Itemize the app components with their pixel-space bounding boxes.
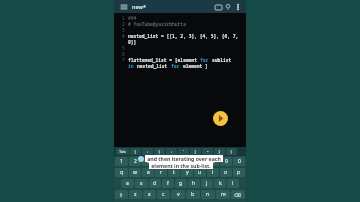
staticText: i — [212, 169, 214, 176]
staticText: : — [147, 149, 149, 154]
staticText: j — [206, 180, 208, 187]
button[interactable]: Menu — [118, 1, 129, 12]
staticText: v — [177, 191, 180, 198]
button[interactable]: ' — [178, 148, 189, 155]
staticText: | — [218, 149, 221, 154]
button[interactable]: s — [135, 179, 148, 188]
button[interactable]: f — [162, 179, 174, 188]
button[interactable]: r — [155, 168, 167, 177]
button[interactable]: i — [207, 168, 219, 177]
button[interactable]: 8 — [207, 157, 219, 166]
button[interactable]: | — [190, 148, 201, 155]
button[interactable]: 1 — [114, 13, 246, 147]
button[interactable]: k — [214, 179, 226, 188]
button[interactable]: b — [186, 190, 200, 199]
button[interactable]: e — [142, 168, 154, 177]
button[interactable]: Hints — [223, 2, 233, 12]
staticText: 3 — [147, 158, 150, 165]
staticText: p — [237, 169, 241, 176]
button[interactable]: u — [194, 168, 206, 177]
button[interactable]: : — [166, 148, 177, 155]
staticText: a — [126, 180, 129, 187]
button[interactable]: y — [181, 168, 193, 177]
staticText: 1 — [120, 158, 123, 165]
staticText: f — [167, 180, 169, 187]
button[interactable]: | — [226, 148, 237, 155]
button[interactable]: 1 — [115, 157, 128, 166]
staticText: 5 — [122, 45, 125, 51]
staticText: element in the sub-list. — [151, 162, 211, 169]
button[interactable]: z — [129, 190, 142, 199]
staticText: q — [120, 169, 124, 176]
button[interactable]: 7 — [194, 157, 206, 166]
staticText: w — [133, 169, 138, 176]
button[interactable]: q — [115, 168, 128, 177]
button[interactable]: p — [233, 168, 245, 177]
staticText: x — [148, 191, 151, 198]
button[interactable]: | — [154, 148, 165, 155]
staticText: 8 — [212, 158, 215, 165]
button[interactable]: x — [143, 190, 156, 199]
button[interactable]: v — [171, 190, 185, 199]
staticText: nested_list — [137, 63, 171, 69]
button[interactable]: a — [121, 179, 134, 188]
staticText: element ] — [183, 63, 208, 69]
staticText: in — [128, 63, 137, 69]
staticText: d — [153, 180, 157, 187]
button[interactable]: : — [142, 148, 153, 155]
staticText: e — [147, 169, 150, 176]
staticText: | — [230, 149, 233, 154]
staticText: nested_list = [[1, 2, 3], [4, 5], [6, 7,… — [128, 33, 246, 39]
staticText: o — [224, 169, 228, 176]
button[interactable]: t — [168, 168, 180, 177]
button[interactable]: Run — [213, 111, 228, 126]
button[interactable]: ⌫ — [231, 190, 245, 199]
staticText: # YouTube@yasirbhutta — [128, 21, 186, 27]
staticText: r — [160, 169, 163, 176]
button[interactable]: 5 — [168, 157, 180, 166]
staticText: Tab — [119, 149, 126, 154]
staticText: b — [191, 191, 195, 198]
staticText: l — [232, 180, 234, 187]
button[interactable]: • — [202, 148, 213, 155]
button[interactable]: | — [214, 148, 225, 155]
button[interactable]: 4 — [155, 157, 167, 166]
button[interactable]: 6 — [181, 157, 193, 166]
button[interactable]: g — [175, 179, 187, 188]
button[interactable]: 2 — [129, 157, 141, 166]
staticText: sublist — [212, 57, 232, 63]
button[interactable]: 3 — [142, 157, 154, 166]
staticText: u — [198, 169, 202, 176]
button[interactable]: Tab — [116, 148, 129, 155]
staticText: 9]] — [128, 39, 137, 45]
button[interactable]: More options — [233, 2, 242, 11]
staticText: | — [134, 149, 137, 154]
button[interactable]: j — [201, 179, 213, 188]
button[interactable]: d — [149, 179, 161, 188]
staticText: 1 — [122, 15, 125, 21]
button[interactable]: ⇧ — [115, 190, 128, 199]
staticText: h — [192, 180, 196, 187]
staticText: for — [171, 63, 183, 69]
button[interactable]: 0 — [233, 157, 245, 166]
button[interactable]: l — [227, 179, 239, 188]
button[interactable]: w — [129, 168, 141, 177]
staticText: : — [171, 149, 173, 154]
button[interactable]: h — [188, 179, 200, 188]
button[interactable]: c — [157, 190, 170, 199]
button[interactable]: Console — [213, 2, 223, 12]
staticText: flattened_list = [element — [128, 57, 200, 63]
staticText: 2 — [122, 21, 125, 27]
button[interactable]: | — [130, 148, 141, 155]
staticText: z — [134, 191, 137, 198]
staticText: 3 — [122, 27, 125, 33]
staticText: 0 — [238, 158, 241, 165]
staticText: 6 — [122, 51, 125, 57]
button[interactable]: o — [220, 168, 232, 177]
button[interactable]: m — [216, 190, 230, 199]
staticText: c — [162, 191, 165, 198]
button[interactable]: 9 — [220, 157, 232, 166]
staticText: | — [158, 149, 161, 154]
button[interactable]: n — [201, 190, 215, 199]
staticText: 7 — [122, 57, 125, 63]
